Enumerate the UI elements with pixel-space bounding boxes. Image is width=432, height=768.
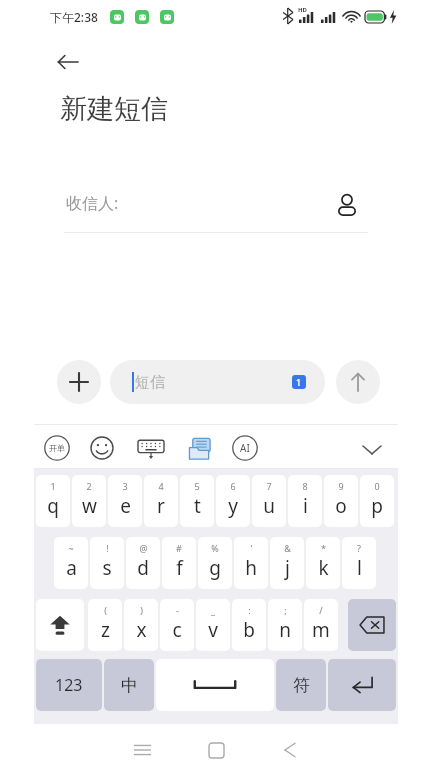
button[interactable]: ( [88,599,122,651]
staticText: b [243,617,255,643]
button[interactable]: Back [272,732,308,768]
button[interactable]: ? [342,537,376,589]
button[interactable]: 9 [324,475,358,527]
button[interactable]: ) [124,599,158,651]
staticText: 收信人: [66,192,119,214]
staticText: 3 [122,480,128,492]
button[interactable]: / [304,599,338,651]
button[interactable]: _ [196,599,230,651]
staticText: 下午2:38 [50,9,98,25]
staticText: d [137,555,149,581]
button[interactable]: 3 [108,475,142,527]
button[interactable]: ; [268,599,302,651]
button[interactable]: * [306,537,340,589]
button[interactable]: 7 [252,475,286,527]
staticText: 短信 [135,373,165,392]
staticText: m [312,617,330,643]
button[interactable]: Key [348,599,396,651]
button[interactable]: - [160,599,194,651]
staticText: e [120,493,131,519]
staticText: 123 [55,674,83,696]
staticText: g [209,555,221,581]
button[interactable]: Ticket [44,435,70,461]
button[interactable]: Home [198,732,234,768]
button[interactable]: Key [328,659,396,711]
staticText: 6 [230,480,236,492]
staticText: f [176,555,183,581]
button[interactable]: 6 [216,475,250,527]
button[interactable]: 5 [180,475,214,527]
button[interactable]: Clipboard [186,435,214,463]
staticText: 4 [158,480,164,492]
button[interactable]: # [162,537,196,589]
button[interactable]: : [232,599,266,651]
staticText: j [285,555,290,581]
button[interactable]: Keyboard [137,435,165,463]
button[interactable]: Key [36,659,102,711]
staticText: 2 [86,480,92,492]
button[interactable]: Key [156,659,274,711]
staticText: p [371,493,383,519]
staticText: x [136,617,147,643]
staticText: c [172,617,182,643]
staticText: u [263,493,275,519]
button[interactable]: Choose contact [328,186,366,224]
staticText: 中 [121,675,138,696]
staticText: % [211,542,219,554]
staticText: HD [298,6,307,14]
button[interactable]: 1 [36,475,70,527]
button[interactable]: Emoji [89,435,115,461]
staticText: i [303,493,308,519]
button[interactable]: ! [90,537,124,589]
staticText: 5 [194,480,200,492]
button[interactable]: Back [48,42,88,82]
staticText: 开单 [49,443,65,453]
button[interactable]: Key [276,659,326,711]
button[interactable]: 8 [288,475,322,527]
staticText: k [318,555,329,581]
button[interactable]: % [198,537,232,589]
staticText: ~ [68,542,74,554]
button[interactable]: Send [336,360,380,404]
button[interactable]: @ [126,537,160,589]
staticText: _ [211,604,215,616]
staticText: ; [284,604,287,616]
staticText: 7 [266,480,272,492]
button[interactable]: 收信人: [0,178,432,232]
staticText: 1 [296,376,302,388]
button[interactable]: AI assistant [232,435,258,461]
staticText: - [176,604,179,616]
staticText: ? [357,542,361,554]
button[interactable]: 0 [360,475,394,527]
button[interactable]: ' [234,537,268,589]
staticText: l [357,555,362,581]
staticText: # [176,542,182,554]
staticText: ( [104,604,107,616]
staticText: 1 [50,480,56,492]
button[interactable]: 4 [144,475,178,527]
staticText: t [194,493,201,519]
staticText: r [157,493,165,519]
staticText: ) [140,604,143,616]
button[interactable]: Key [36,599,84,651]
button[interactable]: 短信 [110,360,325,404]
button[interactable]: & [270,537,304,589]
staticText: v [208,617,218,643]
staticText: o [335,493,347,519]
staticText: AI [240,441,250,455]
staticText: z [101,617,110,643]
staticText: s [102,555,112,581]
button[interactable]: Hide keyboard [358,435,386,463]
staticText: & [284,542,291,554]
staticText: h [245,555,257,581]
button[interactable]: Recents [124,732,160,768]
button[interactable]: 2 [72,475,106,527]
button[interactable]: ~ [54,537,88,589]
staticText: ! [106,542,109,554]
button[interactable]: Add attachment [57,360,101,404]
button[interactable]: Key [104,659,154,711]
staticText: n [279,617,291,643]
staticText: q [47,493,59,519]
staticText: * [321,542,326,554]
staticText: 0 [374,480,380,492]
